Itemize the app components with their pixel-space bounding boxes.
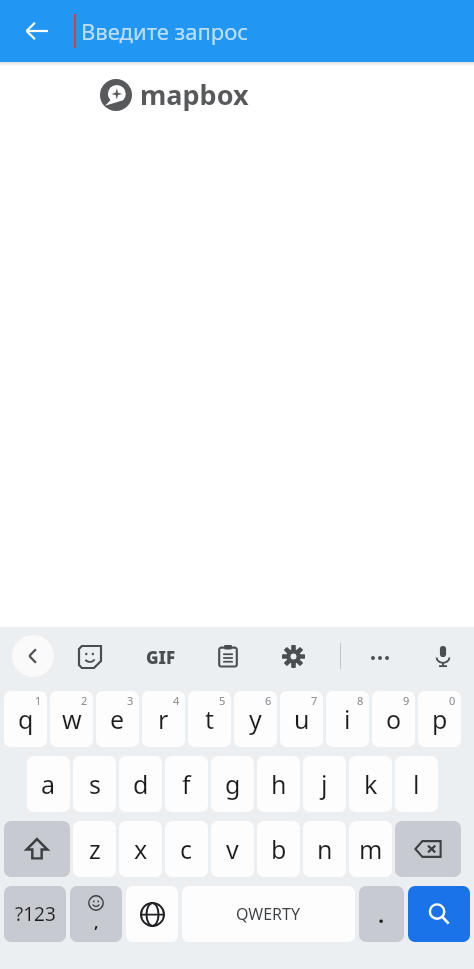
staticText: 7 [311,693,318,708]
staticText: h [271,767,287,801]
staticText: , [94,911,99,933]
button[interactable]: e [96,691,139,747]
button[interactable]: k [349,756,392,812]
button[interactable]: Change language [126,886,178,942]
staticText: o [386,702,402,736]
button[interactable]: x [119,821,162,877]
button[interactable]: j [303,756,346,812]
staticText: t [205,702,215,736]
button[interactable]: f [165,756,208,812]
button[interactable]: w [50,691,93,747]
button[interactable]: More options [363,641,397,675]
staticText: k [364,767,378,801]
staticText: QWERTY [236,903,301,925]
button[interactable]: u [280,691,323,747]
button[interactable]: b [257,821,300,877]
button[interactable]: Back [0,0,74,62]
button[interactable]: g [211,756,254,812]
staticText: c [180,832,193,866]
button[interactable]: n [303,821,346,877]
button[interactable]: i [326,691,369,747]
staticText: e [110,702,125,736]
button[interactable]: s [73,756,116,812]
staticText: 4 [173,693,180,708]
button[interactable]: Clipboard [212,640,244,672]
button[interactable]: . [359,886,404,942]
staticText: j [321,767,328,801]
staticText: s [89,767,101,801]
button[interactable]: z [73,821,116,877]
button[interactable]: m [349,821,392,877]
button[interactable]: d [119,756,162,812]
staticText: n [317,832,333,866]
staticText: mapbox [140,76,249,113]
staticText: ?123 [15,901,56,927]
button[interactable]: q [4,691,47,747]
button[interactable]: GIF [136,641,186,673]
staticText: v [226,832,239,866]
button[interactable]: c [165,821,208,877]
staticText: u [294,702,310,736]
staticText: 8 [357,693,364,708]
staticText: a [41,767,56,801]
staticText: f [182,767,191,801]
staticText: r [158,702,169,736]
button[interactable]: o [372,691,415,747]
button[interactable]: Emoji and comma [70,886,122,942]
staticText: m [359,832,383,866]
button[interactable]: Backspace [395,821,461,877]
staticText: g [225,767,241,801]
staticText: 6 [265,693,272,708]
staticText: y [249,702,262,736]
staticText: i [344,702,351,736]
staticText: x [134,832,148,866]
button[interactable]: p [418,691,461,747]
staticText: l [413,767,420,801]
button[interactable]: Shift [4,821,70,877]
button[interactable]: Back [12,635,54,677]
staticText: 2 [81,693,88,708]
staticText: p [432,702,448,736]
staticText: . [378,899,385,929]
staticText: GIF [146,646,176,669]
staticText: 3 [127,693,134,708]
button[interactable]: h [257,756,300,812]
button[interactable]: t [188,691,231,747]
staticText: z [89,832,101,866]
button[interactable]: Введите запрос [76,0,474,62]
button[interactable]: l [395,756,438,812]
staticText: 1 [35,693,42,708]
button[interactable]: a [27,756,70,812]
staticText: 5 [219,693,226,708]
button[interactable]: QWERTY [182,886,355,942]
button[interactable]: Settings [277,640,309,672]
staticText: d [133,767,149,801]
button[interactable]: Stickers [74,641,106,673]
button[interactable]: v [211,821,254,877]
button[interactable]: Voice input [427,640,459,672]
staticText: b [271,832,287,866]
button[interactable]: Search [408,886,470,942]
staticText: Введите запрос [81,16,249,46]
button[interactable]: y [234,691,277,747]
button[interactable]: r [142,691,185,747]
staticText: q [18,702,34,736]
staticText: 0 [449,693,456,708]
button[interactable]: ?123 [4,886,66,942]
staticText: w [62,702,82,736]
staticText: 9 [403,693,410,708]
